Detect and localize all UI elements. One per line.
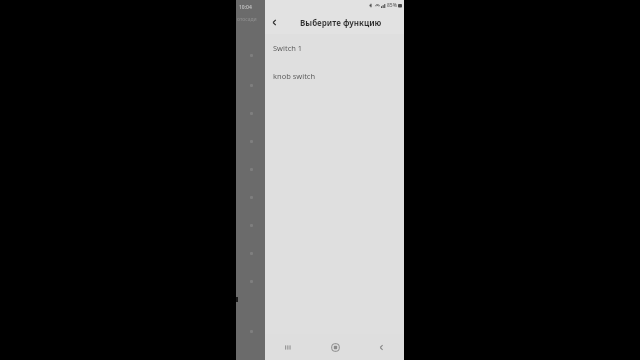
button[interactable]: Back — [358, 334, 404, 360]
staticText: отосади — [237, 16, 257, 23]
button[interactable]: Back — [265, 13, 283, 31]
staticText: Выберите функцию — [300, 17, 382, 28]
button[interactable]: Switch 1 — [265, 34, 404, 62]
button[interactable]: knob switch — [265, 62, 404, 90]
button[interactable]: Recents — [265, 334, 312, 360]
button[interactable]: Home — [312, 334, 358, 360]
staticText: Switch 1 — [273, 43, 303, 53]
staticText: 85% — [387, 2, 397, 9]
staticText: knob switch — [273, 71, 316, 81]
staticText: 10:04 — [239, 4, 252, 11]
